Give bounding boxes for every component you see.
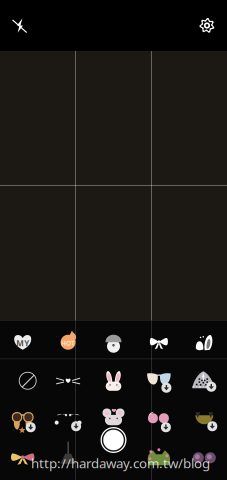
button[interactable]: Ribbon stickers: [136, 323, 182, 361]
button[interactable]: Bear sticker: [91, 438, 136, 477]
button[interactable]: Star sunglasses: [0, 400, 45, 438]
button[interactable]: Pink earrings: [136, 400, 182, 438]
button[interactable]: Purple earrings: [182, 438, 227, 477]
button[interactable]: Hot stickers: [45, 323, 91, 361]
button[interactable]: Flash off: [1, 6, 39, 44]
button[interactable]: Tiara: [182, 361, 227, 400]
button[interactable]: Settings: [188, 6, 226, 44]
staticText: MY: [16, 338, 29, 348]
button[interactable]: Character stickers: [91, 323, 136, 361]
staticText: HOT: [61, 339, 75, 348]
button[interactable]: Bunny face: [91, 361, 136, 400]
button[interactable]: Sunglasses: [136, 361, 182, 400]
button[interactable]: Cat whiskers: [45, 361, 91, 400]
button[interactable]: Cat headband: [182, 400, 227, 438]
button[interactable]: My stickers: [0, 323, 45, 361]
button[interactable]: Shutter: [96, 423, 130, 457]
staticText: http://hardaway.com.tw/blog: [31, 454, 210, 472]
button[interactable]: No sticker: [0, 361, 45, 400]
button[interactable]: Mouse face: [91, 400, 136, 438]
button[interactable]: Lamp sticker: [45, 438, 91, 477]
button[interactable]: Yellow pink bow: [0, 438, 45, 477]
button[interactable]: Pearl earrings: [45, 400, 91, 438]
button[interactable]: Bunny ear stickers: [182, 323, 227, 361]
button[interactable]: Neon cat ears: [136, 438, 182, 477]
